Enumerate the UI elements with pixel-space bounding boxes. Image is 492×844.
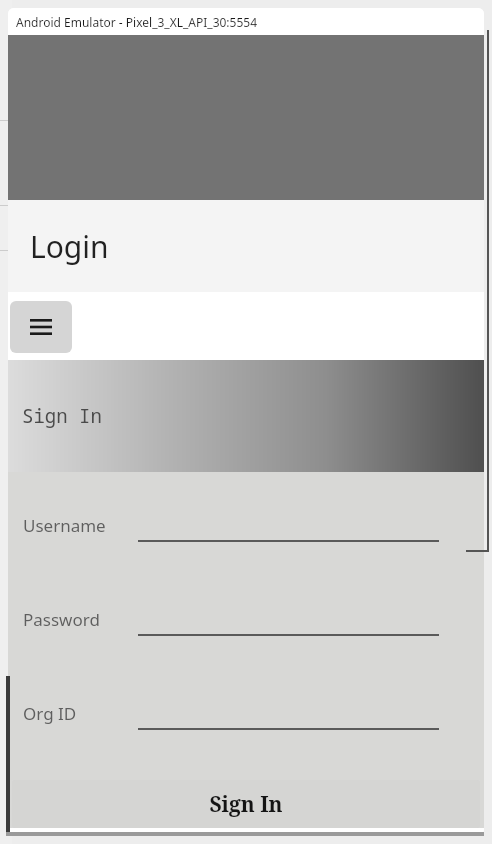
button[interactable]: Password bbox=[8, 584, 484, 654]
staticText: Password bbox=[23, 608, 100, 631]
button[interactable]: Org ID bbox=[8, 678, 484, 748]
staticText: Username bbox=[23, 514, 106, 537]
button[interactable]: Username bbox=[8, 490, 484, 560]
button[interactable]: Sign In bbox=[12, 780, 480, 828]
button[interactable]: Menu bbox=[10, 301, 72, 353]
staticText: Android Emulator - Pixel_3_XL_API_30:555… bbox=[16, 14, 258, 30]
staticText: Login bbox=[30, 226, 109, 267]
staticText: Sign In bbox=[22, 403, 102, 429]
staticText: Sign In bbox=[209, 790, 283, 819]
staticText: Org ID bbox=[23, 702, 77, 725]
